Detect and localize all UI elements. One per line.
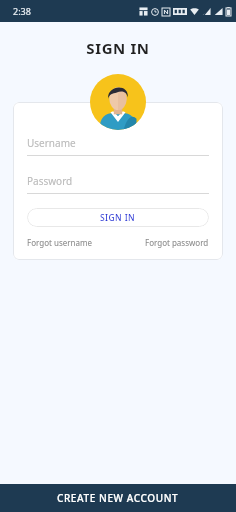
button[interactable]: CREATE NEW ACCOUNT xyxy=(0,484,236,512)
button[interactable]: Profile avatar xyxy=(90,74,146,130)
staticText: Password xyxy=(27,174,73,188)
staticText: SIGN IN xyxy=(100,212,136,224)
staticText: SIGN IN xyxy=(0,38,236,58)
button[interactable]: Forgot username xyxy=(27,237,92,248)
staticText: CREATE NEW ACCOUNT xyxy=(57,491,179,505)
staticText: Username xyxy=(27,136,76,150)
button[interactable]: SIGN IN xyxy=(27,208,209,227)
button[interactable]: Forgot password xyxy=(145,237,209,248)
staticText: 2:38 xyxy=(13,5,31,17)
